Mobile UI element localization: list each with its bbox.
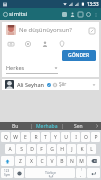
staticText: G <box>50 146 54 153</box>
button[interactable]: Shift <box>1 156 14 166</box>
staticText: Sen <box>74 123 83 130</box>
button[interactable]: Space <box>25 168 75 178</box>
button[interactable]: simitsi <box>9 10 28 18</box>
button[interactable]: I <box>71 132 80 142</box>
button[interactable]: GÖNDER <box>62 50 96 61</box>
button[interactable]: D <box>27 144 36 154</box>
button[interactable]: Y <box>51 132 60 142</box>
button[interactable]: P <box>91 132 100 142</box>
staticText: T <box>44 134 47 141</box>
button[interactable]: R <box>31 132 40 142</box>
button[interactable]: E <box>21 132 30 142</box>
staticText: Ne düşünüyorsun? <box>19 26 72 34</box>
staticText: Türkçe <box>45 170 56 175</box>
staticText: J <box>71 146 73 153</box>
button[interactable]: Check in location <box>58 40 66 48</box>
button[interactable]: A <box>5 144 15 154</box>
staticText: N <box>70 158 74 165</box>
button[interactable]: Tag people <box>41 40 49 48</box>
button[interactable]: Friend requests <box>69 11 75 17</box>
staticText: V <box>50 158 54 165</box>
staticText: Herkes <box>6 64 25 71</box>
staticText: S <box>20 146 23 153</box>
button[interactable]: Emoji <box>14 168 24 178</box>
staticText: R <box>34 134 38 141</box>
button[interactable]: Z <box>15 156 25 166</box>
button[interactable]: W <box>11 132 20 142</box>
staticText: GÖNDER <box>68 52 90 59</box>
staticText: U <box>64 134 68 141</box>
button[interactable]: Expand <box>88 27 95 34</box>
staticText: O <box>84 134 88 141</box>
staticText: M <box>79 158 84 165</box>
button[interactable]: O <box>81 132 90 142</box>
button[interactable]: Ne düşünüyorsun? <box>2 22 99 38</box>
button[interactable]: K <box>77 144 86 154</box>
staticText: Q <box>4 134 8 141</box>
staticText: L <box>90 146 93 153</box>
staticText: K <box>80 146 84 153</box>
button[interactable]: B <box>57 156 66 166</box>
button[interactable]: ! <box>76 168 86 178</box>
button[interactable]: T <box>41 132 50 142</box>
button[interactable]: Feeling <box>24 40 32 48</box>
staticText: I <box>75 134 77 141</box>
button[interactable]: S <box>16 144 26 154</box>
staticText: E <box>24 134 27 141</box>
staticText: X <box>30 158 33 165</box>
staticText: F <box>40 146 43 153</box>
button[interactable]: Home <box>3 12 9 17</box>
staticText: B <box>60 158 64 165</box>
button[interactable]: G <box>47 144 56 154</box>
button[interactable]: Herkes <box>6 64 58 71</box>
staticText: C <box>40 158 44 165</box>
button[interactable]: Post options <box>91 82 96 87</box>
button[interactable]: H <box>57 144 66 154</box>
staticText: Bu <box>12 123 19 130</box>
staticText: 123 <box>4 169 10 173</box>
button[interactable]: Notifications <box>77 11 83 17</box>
staticText: H <box>60 146 64 153</box>
button[interactable]: Add photo <box>7 40 15 48</box>
staticText: Merhaba <box>36 123 58 130</box>
staticText: 13:33 <box>87 1 99 7</box>
staticText: P <box>94 134 98 141</box>
button[interactable]: U <box>61 132 70 142</box>
button[interactable]: M <box>77 156 86 166</box>
button[interactable]: Sen <box>63 122 93 130</box>
staticText: Sym <box>4 173 10 177</box>
staticText: Z <box>19 158 22 165</box>
button[interactable]: Q <box>1 132 10 142</box>
staticText: D <box>30 146 34 153</box>
staticText: Ali Seyhan <box>17 81 45 88</box>
staticText: A <box>8 146 12 153</box>
button[interactable]: Symbols <box>1 168 13 178</box>
button[interactable]: Search <box>85 11 91 17</box>
button[interactable]: X <box>26 156 36 166</box>
button[interactable]: Enter <box>87 168 100 178</box>
button[interactable]: F <box>37 144 46 154</box>
staticText: W <box>13 134 18 141</box>
button[interactable]: L <box>87 144 96 154</box>
button[interactable]: J <box>67 144 76 154</box>
staticText: ! <box>81 168 82 172</box>
button[interactable]: Backspace <box>87 156 100 166</box>
button[interactable]: V <box>47 156 56 166</box>
button[interactable]: More suggestions <box>93 122 101 130</box>
button[interactable]: Messages <box>61 11 67 17</box>
button[interactable]: N <box>67 156 76 166</box>
staticText: Şiir <box>59 81 67 88</box>
button[interactable]: More options <box>93 12 98 17</box>
button[interactable]: C <box>37 156 46 166</box>
button[interactable]: Ali Seyhan <box>2 79 99 90</box>
staticText: . <box>80 172 82 178</box>
button[interactable]: Bu <box>0 122 31 130</box>
staticText: Y <box>54 134 57 141</box>
button[interactable]: Merhaba <box>32 122 62 130</box>
